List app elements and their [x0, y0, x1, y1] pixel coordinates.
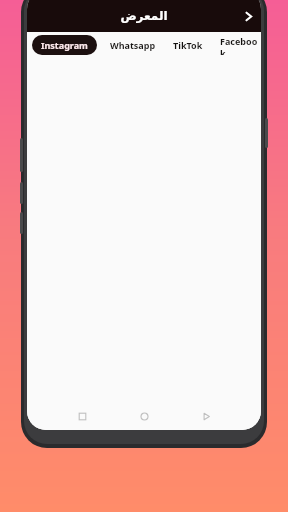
staticText: Facebook — [220, 35, 259, 55]
staticText: Whatsapp — [110, 39, 156, 51]
button[interactable]: TikTok — [171, 35, 205, 55]
button[interactable]: Recent apps — [70, 404, 94, 428]
button[interactable]: Whatsapp — [108, 35, 158, 55]
staticText: TikTok — [173, 39, 203, 51]
button[interactable]: Instagram — [32, 35, 97, 55]
button[interactable]: Home — [132, 404, 156, 428]
button[interactable]: Back — [194, 404, 218, 428]
staticText: المعرض — [120, 9, 168, 23]
button[interactable]: Next — [235, 3, 261, 29]
staticText: Instagram — [41, 39, 88, 51]
button[interactable]: Facebook — [218, 35, 261, 55]
